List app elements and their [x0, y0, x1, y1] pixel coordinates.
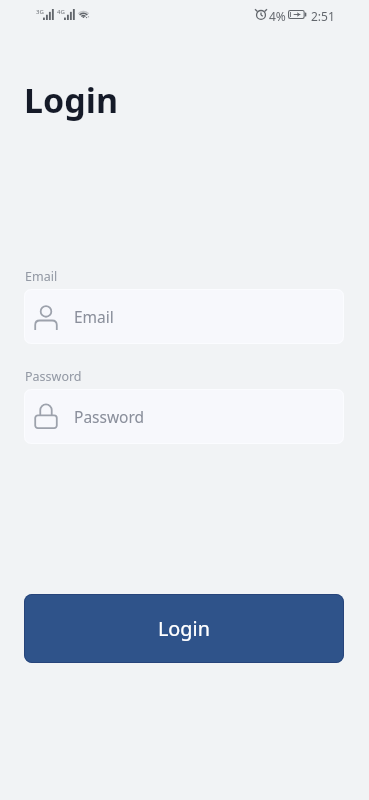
staticText: 4G	[57, 8, 65, 16]
staticText: 2:51	[311, 8, 335, 24]
other: Wi-Fi	[77, 8, 91, 19]
button[interactable]: Password	[24, 389, 344, 444]
button[interactable]: Login	[24, 594, 344, 663]
staticText: Password	[74, 406, 145, 427]
staticText: Email	[74, 306, 114, 327]
staticText: Login	[24, 77, 119, 123]
staticText: 3G	[36, 8, 44, 16]
staticText: Login	[158, 615, 210, 642]
staticText: 4%	[269, 8, 286, 24]
staticText: Password	[25, 368, 82, 385]
button[interactable]: Email	[24, 289, 344, 344]
other: Battery charging, 4 percent	[288, 10, 307, 19]
staticText: Email	[25, 268, 58, 285]
other: Alarm set	[255, 8, 267, 20]
